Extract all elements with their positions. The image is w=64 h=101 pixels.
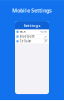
staticText: Bluetooth — [20, 35, 35, 38]
staticText: Cellular — [20, 39, 31, 43]
button[interactable]: Bluetooth — [15, 34, 49, 39]
button[interactable]: Wi-Fi — [15, 30, 49, 34]
staticText: Settings — [23, 23, 40, 28]
button[interactable]: Cellular — [15, 39, 49, 43]
staticText: Mobile Settings — [12, 7, 52, 14]
staticText: On — [44, 35, 48, 38]
staticText: Off — [44, 39, 48, 43]
staticText: Wi-Fi — [20, 30, 26, 33]
staticText: Home — [40, 30, 48, 33]
